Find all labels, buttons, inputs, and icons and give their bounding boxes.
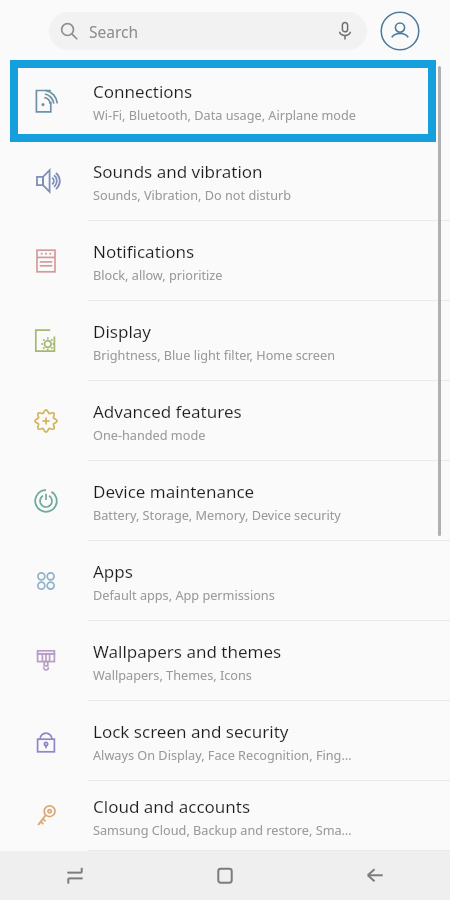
staticText: Display [93, 320, 151, 343]
staticText: Samsung Cloud, Backup and restore, Sma… [93, 821, 352, 838]
staticText: Sounds, Vibration, Do not disturb [93, 186, 292, 203]
staticText: Advanced features [93, 400, 242, 423]
staticText: Sounds and vibration [93, 160, 263, 183]
button[interactable]: Notifications [0, 221, 450, 301]
staticText: Wallpapers and themes [93, 640, 282, 663]
button[interactable]: Search [49, 12, 367, 50]
button[interactable]: Voice search [323, 12, 367, 50]
staticText: Brightness, Blue light filter, Home scre… [93, 346, 335, 363]
button[interactable]: Wallpapers and themes [0, 621, 450, 701]
button[interactable]: Lock screen and security [0, 701, 450, 781]
button[interactable]: Sounds and vibration [0, 141, 450, 221]
staticText: Lock screen and security [93, 720, 289, 743]
staticText: Battery, Storage, Memory, Device securit… [93, 506, 341, 523]
button[interactable]: Apps [0, 541, 450, 621]
staticText: Search [89, 21, 139, 42]
button[interactable]: Device maintenance [0, 461, 450, 541]
button[interactable]: Account [380, 11, 420, 51]
button[interactable]: Display [0, 301, 450, 381]
staticText: Default apps, App permissions [93, 586, 275, 603]
staticText: One-handed mode [93, 426, 206, 443]
staticText: Cloud and accounts [93, 795, 251, 818]
staticText: Notifications [93, 240, 195, 263]
staticText: Block, allow, prioritize [93, 266, 223, 283]
button[interactable]: Recents [0, 851, 150, 900]
staticText: Device maintenance [93, 480, 255, 503]
staticText: Wallpapers, Themes, Icons [93, 666, 252, 683]
staticText: Wi-Fi, Bluetooth, Data usage, Airplane m… [93, 106, 356, 123]
staticText: Apps [93, 560, 133, 583]
button[interactable]: Back [300, 851, 450, 900]
button[interactable]: Home [150, 851, 300, 900]
button[interactable]: Cloud and accounts [0, 781, 450, 851]
staticText: Connections [93, 80, 193, 103]
button[interactable]: Advanced features [0, 381, 450, 461]
button[interactable]: Connections [0, 61, 450, 141]
staticText: Always On Display, Face Recognition, Fin… [93, 746, 352, 763]
